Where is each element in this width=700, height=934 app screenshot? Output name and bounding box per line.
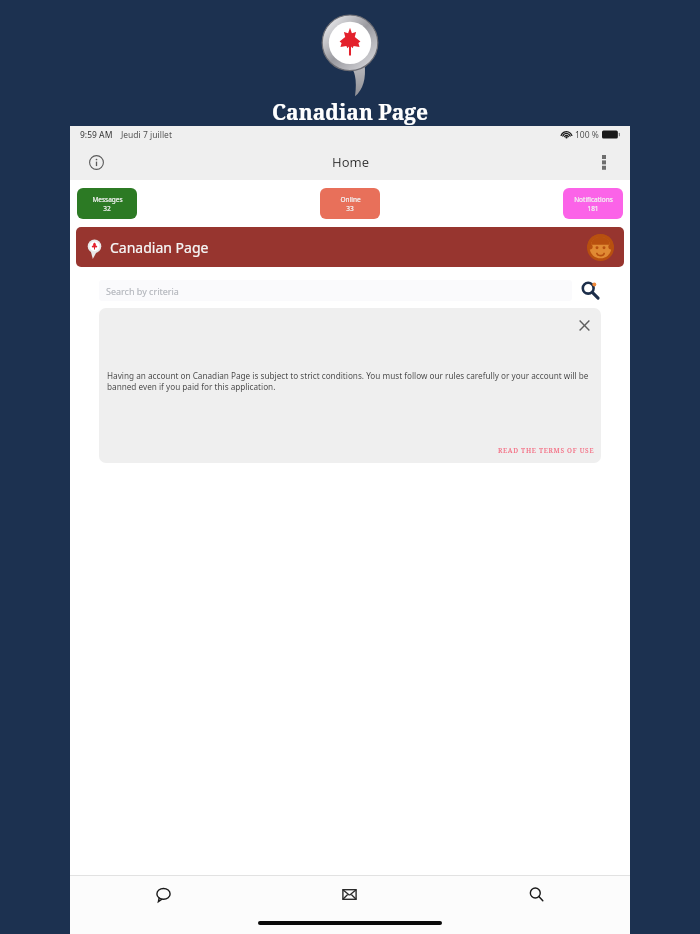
staticText: Notifications xyxy=(574,195,613,204)
button[interactable]: Messages xyxy=(77,188,137,219)
button[interactable]: Information xyxy=(80,146,112,178)
button[interactable]: Online xyxy=(320,188,380,219)
staticText: Having an account on Canadian Page is su… xyxy=(107,370,593,392)
button[interactable]: Canadian Page xyxy=(76,227,624,267)
staticText: Search by criteria xyxy=(106,285,179,297)
button[interactable]: Chat xyxy=(70,876,256,912)
button[interactable]: More options xyxy=(588,146,620,178)
staticText: Canadian Page xyxy=(272,98,429,127)
button[interactable]: Notifications xyxy=(563,188,623,219)
staticText: 33 xyxy=(346,204,354,213)
staticText: Online xyxy=(340,195,361,204)
staticText: Home xyxy=(332,153,369,171)
button[interactable]: Search by criteria xyxy=(99,280,572,301)
button[interactable]: Close xyxy=(571,312,597,338)
other: Profile xyxy=(587,234,614,261)
staticText: 32 xyxy=(103,204,111,213)
button[interactable]: Messages xyxy=(256,876,443,912)
staticText: Jeudi 7 juillet xyxy=(121,129,172,141)
staticText: 9:59 AM xyxy=(80,129,113,141)
staticText: 100 % xyxy=(575,129,599,141)
staticText: Messages xyxy=(92,195,123,204)
staticText: 181 xyxy=(587,204,599,213)
button[interactable]: Search xyxy=(443,876,630,912)
staticText: READ THE TERMS OF USE xyxy=(498,446,595,455)
button[interactable]: READ THE TERMS OF USE xyxy=(498,446,595,455)
staticText: Canadian Page xyxy=(110,238,209,257)
button[interactable]: Search xyxy=(579,279,601,301)
